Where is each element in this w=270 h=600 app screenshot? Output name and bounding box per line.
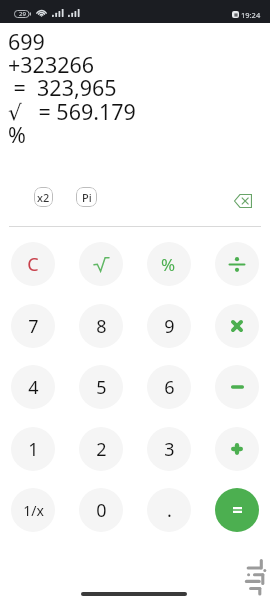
staticText: 9 [164, 314, 175, 339]
staticText: 0 [96, 498, 107, 523]
staticText: 1 [28, 437, 39, 462]
button[interactable]: Pi [76, 187, 97, 207]
button[interactable]: 2 [79, 427, 123, 471]
staticText: √ = 569.179 [8, 97, 136, 126]
button[interactable]: Equals [215, 488, 259, 532]
button[interactable]: 7 [11, 304, 55, 348]
staticText: 3 [164, 437, 175, 462]
staticText: C [27, 252, 39, 277]
staticText: 4 [28, 375, 39, 400]
button[interactable]: 1/x [11, 488, 55, 532]
button[interactable]: Square root [79, 242, 123, 286]
button[interactable]: Backspace [232, 190, 254, 212]
button[interactable]: % [147, 242, 191, 286]
staticText: 1/x [23, 501, 44, 520]
staticText: 699 [8, 27, 45, 56]
button[interactable]: 3 [147, 427, 191, 471]
other: Square root [94, 257, 109, 272]
button[interactable]: x2 [34, 187, 53, 207]
staticText: 29 [19, 10, 26, 18]
staticText: 2 [96, 437, 107, 462]
button[interactable]: Divide [215, 242, 259, 286]
button[interactable]: Subtract [215, 365, 259, 409]
staticText: % [8, 120, 26, 149]
other: Multiply [231, 320, 243, 332]
staticText: 5 [96, 375, 107, 400]
staticText: 6 [164, 375, 175, 400]
staticText: 19:24 [241, 10, 261, 20]
other: Equals [233, 507, 242, 513]
staticText: x2 [37, 190, 50, 205]
button[interactable]: 5 [79, 365, 123, 409]
button[interactable]: 8 [79, 304, 123, 348]
button[interactable]: 6 [147, 365, 191, 409]
staticText: . [167, 498, 172, 523]
staticText: % [161, 253, 176, 276]
button[interactable]: Multiply [215, 304, 259, 348]
staticText: +323266 [8, 50, 95, 79]
button[interactable]: 4 [11, 365, 55, 409]
other: Add [231, 443, 243, 455]
staticText: 8 [96, 314, 107, 339]
staticText: 7 [28, 314, 39, 339]
other: Divide [229, 257, 245, 272]
button[interactable]: 9 [147, 304, 191, 348]
button[interactable]: . [147, 488, 191, 532]
staticText: = 323,965 [8, 73, 117, 102]
other: Subtract [231, 385, 244, 389]
other: Watermark [244, 556, 268, 598]
staticText: Pi [82, 190, 92, 205]
button[interactable]: Add [215, 427, 259, 471]
button[interactable]: 1 [11, 427, 55, 471]
button[interactable]: C [11, 242, 55, 286]
button[interactable]: 0 [79, 488, 123, 532]
